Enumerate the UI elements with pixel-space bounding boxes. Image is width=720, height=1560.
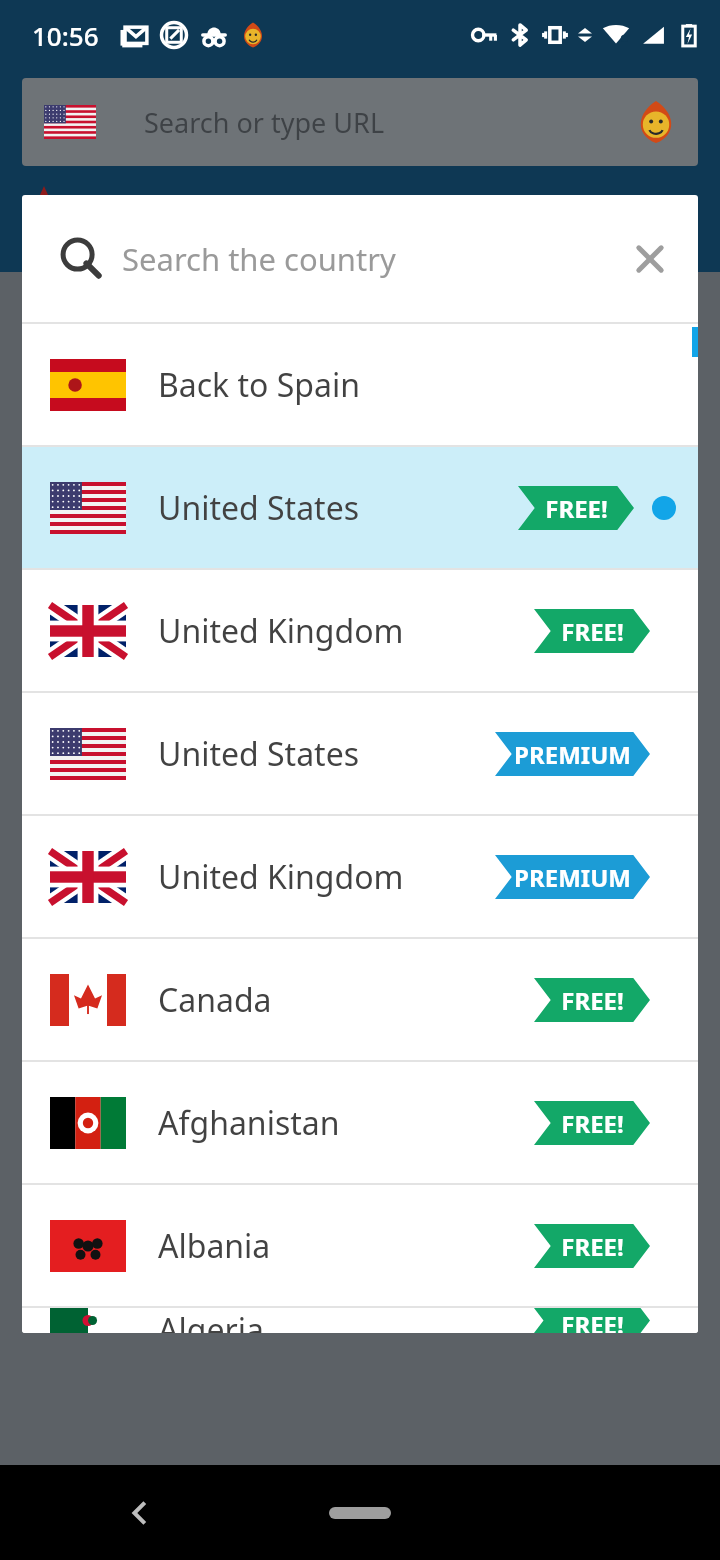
- button[interactable]: Albania: [22, 1185, 698, 1306]
- button[interactable]: Afghanistan: [22, 1062, 698, 1183]
- staticText: Search or type URL: [144, 104, 385, 141]
- other: Search: [60, 237, 104, 281]
- staticText: United Kingdom: [158, 855, 495, 899]
- button[interactable]: Search: [22, 195, 698, 322]
- staticText: Albania: [158, 1224, 534, 1268]
- button[interactable]: Back: [120, 1493, 160, 1533]
- staticText: PREMIUM: [514, 738, 631, 771]
- staticText: 10:56: [32, 18, 99, 53]
- staticText: Algeria: [158, 1308, 534, 1333]
- button[interactable]: United States: [22, 693, 698, 814]
- staticText: FREE!: [561, 1230, 624, 1263]
- staticText: Back to Spain: [158, 363, 650, 407]
- button[interactable]: Search or type URL: [22, 78, 698, 166]
- staticText: FREE!: [561, 984, 624, 1017]
- staticText: FREE!: [545, 492, 608, 525]
- staticText: Afghanistan: [158, 1101, 534, 1145]
- staticText: United States: [158, 732, 495, 776]
- staticText: Canada: [158, 978, 534, 1022]
- button[interactable]: United States: [22, 447, 698, 568]
- staticText: United Kingdom: [158, 609, 534, 653]
- staticText: FREE!: [561, 1107, 624, 1140]
- staticText: FREE!: [561, 1308, 624, 1333]
- staticText: PREMIUM: [514, 861, 631, 894]
- button[interactable]: Algeria: [22, 1308, 698, 1333]
- staticText: FREE!: [561, 615, 624, 648]
- button[interactable]: Home: [329, 1507, 391, 1519]
- staticText: United States: [158, 486, 518, 530]
- button[interactable]: United Kingdom: [22, 570, 698, 691]
- staticText: Search the country: [122, 238, 396, 280]
- button[interactable]: Canada: [22, 939, 698, 1060]
- button[interactable]: Back to Spain: [22, 324, 698, 445]
- button[interactable]: United Kingdom: [22, 816, 698, 937]
- button[interactable]: Clear: [630, 239, 670, 279]
